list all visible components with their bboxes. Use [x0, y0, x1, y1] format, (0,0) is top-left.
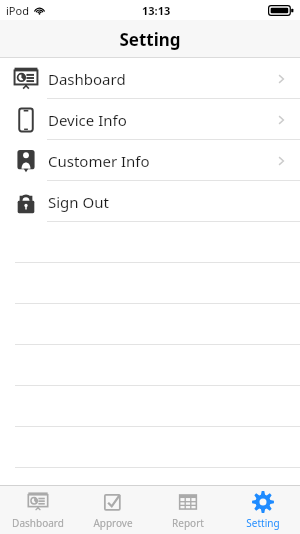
staticText: Setting — [119, 28, 181, 51]
button[interactable]: Dashboard — [0, 486, 75, 534]
button[interactable]: Approve — [75, 486, 150, 534]
other: Sign Out — [13, 189, 39, 215]
other: Dashboard — [13, 66, 39, 92]
staticText: Approve — [93, 516, 133, 530]
staticText: 13:13 — [142, 3, 171, 18]
button[interactable]: Sign Out — [0, 181, 300, 222]
staticText: iPod — [6, 3, 29, 18]
other: Device Info — [13, 107, 39, 133]
button[interactable]: Device Info — [0, 99, 300, 140]
staticText: Sign Out — [48, 192, 109, 212]
button[interactable]: Customer Info — [0, 140, 300, 181]
staticText: Dashboard — [48, 69, 126, 89]
staticText: Device Info — [48, 110, 127, 130]
staticText: Report — [172, 516, 204, 530]
staticText: Customer Info — [48, 151, 150, 171]
staticText: Dashboard — [12, 516, 64, 530]
other: Customer Info — [13, 148, 39, 174]
button[interactable]: Setting — [225, 486, 300, 534]
staticText: Setting — [246, 516, 280, 530]
button[interactable]: Report — [150, 486, 225, 534]
button[interactable]: Dashboard — [0, 58, 300, 99]
